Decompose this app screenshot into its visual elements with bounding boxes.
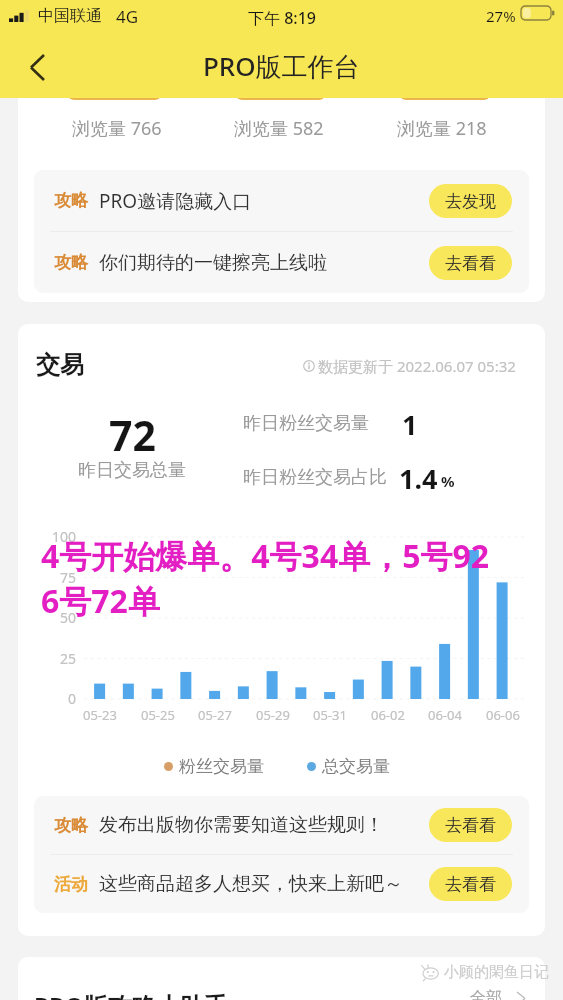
staticText: 72 xyxy=(109,407,156,463)
staticText: 4号开始爆单。4号34单，5号92 xyxy=(41,534,490,578)
staticText: 浏览量 766 xyxy=(72,116,162,141)
staticText: 去看看 xyxy=(445,253,496,274)
staticText: 75 xyxy=(26,568,76,587)
staticText: 粉丝交易量 xyxy=(179,756,264,777)
button[interactable]: 去看看 xyxy=(429,808,512,842)
staticText: 06-04 xyxy=(428,706,462,724)
staticText: 昨日粉丝交易占比 xyxy=(243,466,387,489)
staticText: 攻略 xyxy=(54,252,88,273)
staticText: 05-27 xyxy=(198,706,232,724)
button[interactable]: 攻略 xyxy=(34,232,529,293)
button[interactable]: 攻略 xyxy=(34,170,529,231)
staticText: % xyxy=(441,471,455,491)
staticText: 50 xyxy=(26,608,76,627)
staticText: 1 xyxy=(402,406,418,443)
staticText: 这些商品超多人想买，快来上新吧～ xyxy=(99,872,403,896)
staticText: 6号72单 xyxy=(41,579,160,623)
staticText: 昨日交易总量 xyxy=(78,459,186,482)
button[interactable]: 去看看 xyxy=(429,246,512,280)
staticText: 05-25 xyxy=(141,706,175,724)
staticText: 浏览量 582 xyxy=(234,116,324,141)
staticText: 中国联通 xyxy=(38,6,102,26)
staticText: 05-31 xyxy=(313,706,347,724)
staticText: 发布出版物你需要知道这些规则！ xyxy=(99,813,384,837)
staticText: 昨日粉丝交易量 xyxy=(243,412,369,435)
staticText: 27% xyxy=(486,6,516,26)
button[interactable]: 去发现 xyxy=(429,184,512,218)
staticText: 去发现 xyxy=(445,191,496,212)
staticText: 活动 xyxy=(54,874,88,895)
staticText: 下午 8:19 xyxy=(248,7,316,29)
staticText: PRO版工作台 xyxy=(203,48,360,84)
staticText: 去看看 xyxy=(445,815,496,836)
staticText: 全部 xyxy=(470,988,502,1000)
staticText: 1.4 xyxy=(399,460,438,497)
staticText: 05-29 xyxy=(256,706,290,724)
staticText: 去看看 xyxy=(445,874,496,895)
button[interactable]: 攻略 xyxy=(34,796,529,854)
staticText: 05-23 xyxy=(83,706,117,724)
staticText: 你们期待的一键擦亮上线啦 xyxy=(99,251,327,275)
staticText: 06-06 xyxy=(486,706,520,724)
staticText: PRO版攻略小助手 xyxy=(34,989,228,1000)
staticText: PRO邀请隐藏入口 xyxy=(99,188,252,214)
button[interactable]: Back xyxy=(8,42,66,92)
staticText: 浏览量 218 xyxy=(397,116,487,141)
staticText: 交易 xyxy=(36,350,84,380)
staticText: 100 xyxy=(26,527,76,546)
button[interactable]: 全部 xyxy=(470,988,525,1000)
staticText: 攻略 xyxy=(54,815,88,836)
staticText: 0 xyxy=(26,689,76,708)
staticText: 06-02 xyxy=(371,706,405,724)
staticText: 攻略 xyxy=(54,190,88,211)
button[interactable]: 去看看 xyxy=(429,867,512,901)
staticText: 小顾的閑鱼日记 xyxy=(444,963,549,982)
staticText: 数据更新于 2022.06.07 05:32 xyxy=(318,356,516,376)
staticText: 25 xyxy=(26,649,76,668)
staticText: 总交易量 xyxy=(322,756,390,777)
staticText: 4G xyxy=(116,5,139,28)
button[interactable]: 活动 xyxy=(34,855,529,913)
